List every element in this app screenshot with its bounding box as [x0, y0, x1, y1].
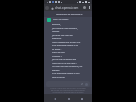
button[interactable]: Attach [46, 81, 90, 87]
staticText: Sans de calo [52, 51, 65, 54]
staticText: evidence. [52, 37, 62, 40]
staticText: que ce ferait [52, 76, 65, 79]
button[interactable]: Tabs [83, 6, 86, 9]
staticText: J'ai compris mes besoins, [52, 27, 78, 30]
button[interactable]: chat.openai.com [51, 5, 83, 11]
staticText: Mais par is ne mal que j [52, 62, 77, 65]
staticText: Generateur de Demande d [56, 13, 83, 16]
staticText: Mais maintenant je vais cce [52, 41, 81, 44]
button[interactable]: Send [85, 83, 88, 86]
button[interactable]: Back [51, 95, 58, 102]
staticText: rapelle. [52, 30, 60, 33]
staticText: applies. [52, 69, 60, 72]
staticText: de verifier les informations importantes… [44, 89, 92, 91]
staticText: ChatGPT peut faire des erreurs. Envisage… [44, 87, 92, 89]
other: Attach [81, 83, 83, 85]
button[interactable]: Home [65, 95, 72, 102]
staticText: Coupter 1 [52, 55, 63, 58]
staticText: Au main de mes moyence, de [52, 65, 83, 68]
staticText: Consultez les preferences en matiere [44, 91, 92, 93]
staticText: Bonjour, [52, 23, 61, 26]
button[interactable]: Account [45, 6, 49, 10]
staticText: Il ya demande partie ci to [52, 44, 79, 47]
staticText: J'ai ainsi calc voit qui [52, 34, 73, 37]
staticText: Chat "un rappo" [53, 18, 69, 21]
staticText: tu ferait.. [52, 48, 62, 51]
button[interactable]: Recents [78, 95, 85, 102]
staticText: Il ya demande partie ci tou [52, 72, 80, 75]
staticText: chat.openai.com [55, 6, 79, 10]
staticText: J'ai ou que la guerre itai [52, 58, 77, 61]
